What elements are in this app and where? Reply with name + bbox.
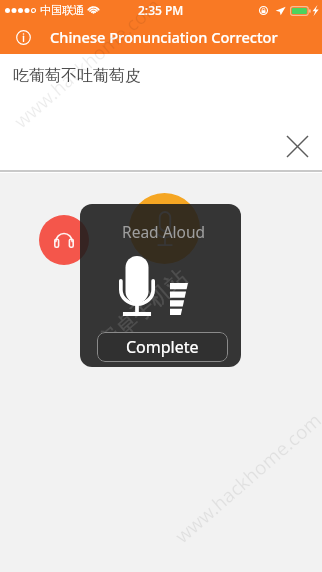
staticText: Read Aloud	[122, 221, 206, 242]
staticText: Chinese Pronunciation Corrector	[50, 27, 278, 47]
staticText: 吃葡萄不吐葡萄皮	[13, 66, 141, 86]
button[interactable]: Complete	[97, 332, 228, 362]
staticText: www.hackhome.com	[8, 0, 166, 134]
staticText: 2:35 PM	[138, 2, 184, 18]
button[interactable]: Listen	[39, 215, 89, 265]
button[interactable]: Record	[129, 193, 200, 264]
button[interactable]: Close	[277, 126, 318, 167]
staticText: Complete	[126, 336, 199, 358]
staticText: 安卓手机站	[92, 263, 194, 357]
button[interactable]: Info	[9, 23, 37, 51]
staticText: 中国联通	[40, 3, 84, 17]
